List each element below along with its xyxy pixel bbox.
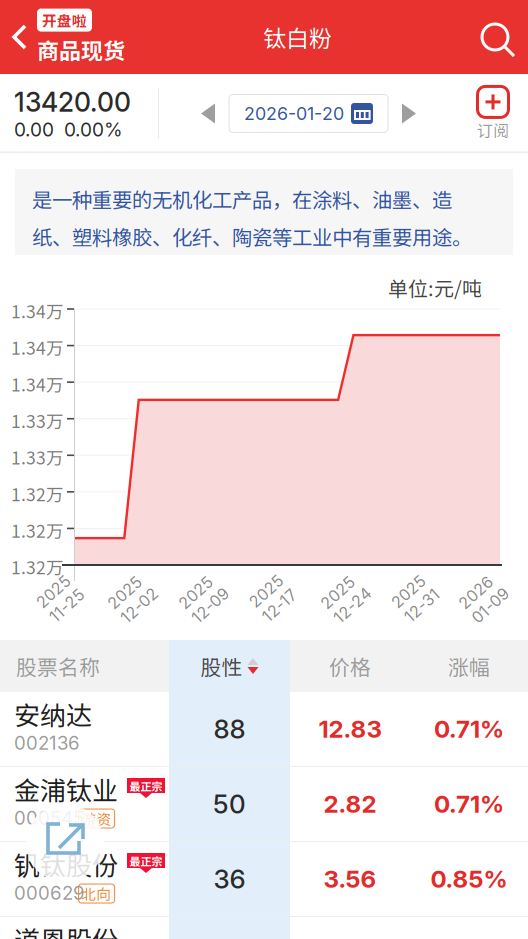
staticText: 88 (213, 713, 245, 745)
staticText: 金浦钛业 (14, 770, 118, 808)
staticText: 13420.00 (14, 86, 131, 118)
staticText: 50 (213, 788, 246, 820)
staticText: 1.32万 (11, 554, 64, 579)
button[interactable]: 88 (0, 692, 528, 766)
staticText: 1.34万 (11, 335, 64, 360)
staticText: 1.33万 (11, 408, 64, 433)
staticText: 股性 (200, 651, 242, 681)
staticText: 订阅 (477, 118, 509, 142)
staticText: 12.83 (318, 714, 381, 744)
staticText: 安纳达 (14, 695, 92, 733)
staticText: 1.33万 (11, 444, 64, 470)
button[interactable]: Next day (388, 90, 430, 136)
staticText: 1.34万 (11, 371, 64, 396)
staticText: 单位:元/吨 (388, 273, 482, 302)
staticText: 道恩股份 (14, 920, 118, 939)
staticText: 2.82 (323, 789, 376, 819)
staticText: 纸、塑料橡胶、化纤、陶瓷等工业中有重要用途。 (32, 221, 472, 251)
staticText: 是一种重要的无机化工产品，在涂料、油墨、造 (32, 184, 452, 213)
staticText: 最正宗 (129, 853, 162, 869)
staticText: 36 (213, 863, 245, 895)
staticText: 2025 (395, 579, 435, 598)
button[interactable]: 股性 (169, 640, 290, 692)
staticText: 钛白粉 (263, 20, 332, 54)
button[interactable]: Share (26, 804, 104, 882)
staticText: 11-25 (40, 598, 81, 618)
button[interactable]: Previous day (187, 90, 229, 136)
staticText: 2025 (324, 579, 364, 598)
staticText: 12-17 (253, 598, 293, 618)
staticText: 商品现货 (37, 34, 125, 65)
staticText: 3.56 (323, 864, 376, 894)
staticText: 钒钛股份 (14, 845, 118, 883)
button[interactable]: 36 (0, 842, 528, 916)
staticText: 北向 (82, 883, 112, 904)
staticText: 12-24 (324, 598, 368, 618)
staticText: 2025 (40, 579, 80, 598)
staticText: 0.71% (434, 714, 504, 744)
staticText: 2026-01-20 (244, 103, 344, 124)
staticText: 12-02 (111, 598, 155, 618)
staticText: 000629 (14, 882, 85, 904)
button[interactable]: 订阅 (458, 85, 528, 142)
staticText: 2025 (111, 579, 151, 598)
staticText: 12-09 (182, 598, 226, 618)
staticText: 0.00 0.00% (14, 118, 123, 141)
staticText: 01-09 (462, 598, 506, 618)
staticText: 游资 (82, 808, 112, 829)
staticText: 0.71% (434, 789, 504, 819)
staticText: 1.32万 (11, 517, 64, 543)
staticText: 1.34万 (11, 298, 64, 323)
staticText: 价格 (329, 651, 371, 681)
staticText: 股票名称 (16, 651, 100, 681)
staticText: 2025 (253, 579, 293, 598)
staticText: 开盘啦 (42, 10, 87, 31)
button[interactable]: 30 (0, 917, 528, 939)
staticText: 000545 (14, 807, 84, 829)
staticText: 002136 (14, 732, 80, 754)
staticText: 1.32万 (11, 481, 64, 506)
staticText: 最正宗 (129, 778, 162, 794)
staticText: 2025 (182, 579, 222, 598)
staticText: 涨幅 (448, 651, 490, 681)
button[interactable]: 开盘啦 (0, 0, 133, 74)
button[interactable]: 50 (0, 767, 528, 841)
staticText: 12-31 (395, 598, 436, 618)
staticText: 2026 (462, 579, 502, 598)
button[interactable]: Search (462, 0, 528, 74)
staticText: 0.85% (430, 864, 507, 894)
